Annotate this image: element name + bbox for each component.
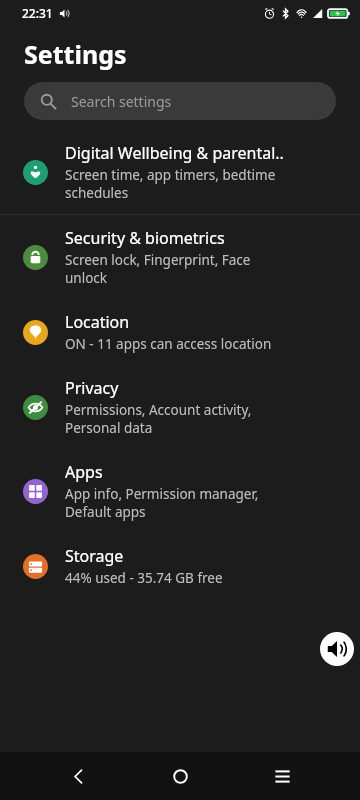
button[interactable]: Volume	[320, 632, 354, 666]
staticText: Location	[65, 311, 130, 333]
staticText: Security & biometrics	[65, 227, 225, 249]
staticText: Privacy	[65, 377, 119, 399]
button[interactable]: Search settings	[24, 82, 336, 120]
button[interactable]: Home	[156, 752, 204, 800]
staticText: App info, Permission manager, Default ap…	[65, 485, 259, 521]
staticText: 44% used - 35.74 GB free	[65, 569, 223, 587]
staticText: Screen time, app timers, bedtime schedul…	[65, 166, 276, 202]
staticText: Permissions, Account activity, Personal …	[65, 401, 252, 437]
button[interactable]: Storage	[0, 533, 360, 599]
button[interactable]: Apps	[0, 449, 360, 533]
staticText: Storage	[65, 545, 124, 567]
button[interactable]: Location	[0, 299, 360, 365]
button[interactable]: Privacy	[0, 365, 360, 449]
staticText: ON - 11 apps can access location	[65, 335, 272, 353]
staticText: 22:31	[22, 5, 53, 21]
staticText: Settings	[24, 37, 127, 71]
staticText: Apps	[65, 461, 103, 483]
staticText: Search settings	[71, 92, 172, 111]
staticText: Screen lock, Fingerprint, Face unlock	[65, 251, 251, 287]
button[interactable]: Recents	[258, 752, 306, 800]
button[interactable]: Digital Wellbeing & parental..	[0, 130, 360, 214]
button[interactable]: Security & biometrics	[0, 215, 360, 299]
button[interactable]: Back	[54, 752, 102, 800]
staticText: Digital Wellbeing & parental..	[65, 142, 284, 164]
